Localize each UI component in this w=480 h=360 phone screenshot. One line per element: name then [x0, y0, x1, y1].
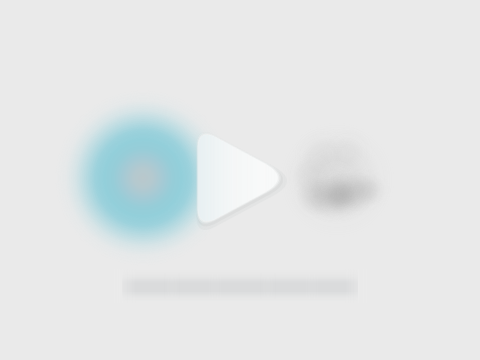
button[interactable]: Play	[189, 119, 299, 237]
